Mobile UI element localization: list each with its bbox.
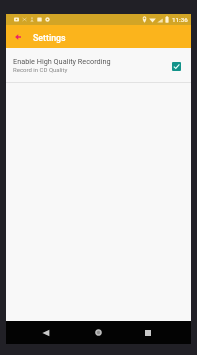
button[interactable]: Navigate up	[6, 25, 29, 48]
button[interactable]: Home	[87, 321, 110, 344]
button[interactable]: Back	[34, 321, 57, 344]
button[interactable]: Enable High Quality Recording	[6, 48, 191, 82]
staticText: Settings	[33, 33, 66, 43]
button[interactable]: Enable High Quality Recording	[172, 62, 181, 71]
staticText: Enable High Quality Recording	[13, 57, 111, 66]
staticText: 11:36	[172, 16, 188, 23]
staticText: Record in CD Quality	[13, 66, 68, 73]
button[interactable]: Recent apps	[136, 321, 159, 344]
